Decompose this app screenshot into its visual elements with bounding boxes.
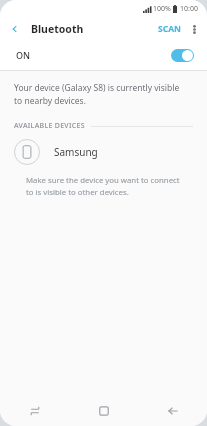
button[interactable]: Home [69, 396, 138, 426]
button[interactable]: ON [0, 40, 207, 70]
button[interactable]: Bluetooth on [171, 49, 194, 62]
staticText: ON [16, 49, 31, 61]
button[interactable]: Back [7, 21, 23, 37]
staticText: Make sure the device you want to connect… [26, 175, 185, 198]
staticText: 100% [153, 4, 171, 14]
staticText: Bluetooth [31, 22, 84, 36]
staticText: AVAILABLE DEVICES [14, 121, 85, 131]
button[interactable]: SCAN [154, 20, 185, 38]
button[interactable]: Back [138, 396, 207, 426]
staticText: SCAN [158, 23, 181, 35]
button[interactable]: More options [185, 20, 203, 38]
staticText: Samsung [54, 145, 98, 159]
staticText: 10:00 [180, 4, 198, 14]
button[interactable]: Samsung [0, 135, 207, 169]
staticText: Your device (Galaxy S8) is currently vis… [14, 82, 187, 107]
button[interactable]: Recents [0, 396, 69, 426]
